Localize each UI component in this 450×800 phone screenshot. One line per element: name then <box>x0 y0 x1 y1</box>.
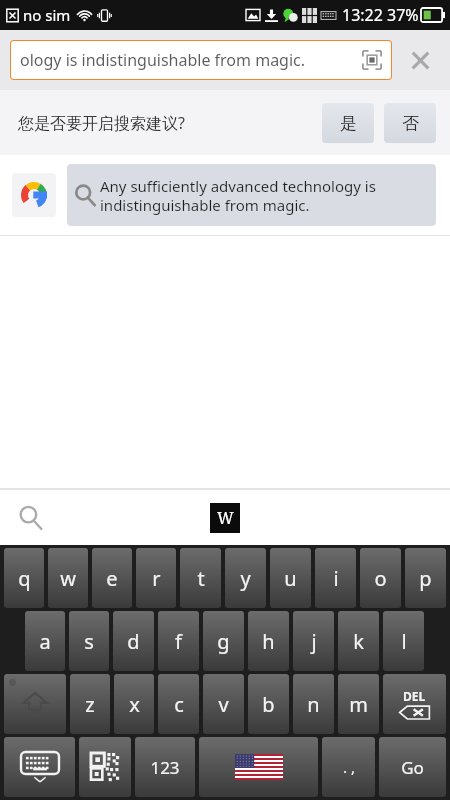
staticText: d <box>127 628 140 655</box>
button[interactable]: Shift <box>4 674 66 734</box>
button[interactable]: l <box>383 611 424 671</box>
staticText: . , <box>343 757 355 777</box>
staticText: o <box>374 565 387 592</box>
staticText: 13:22 <box>342 4 383 26</box>
staticText: h <box>262 628 275 655</box>
staticText: 123 <box>150 756 180 779</box>
button[interactable]: b <box>248 674 289 734</box>
button[interactable]: Scan QR code <box>79 737 131 797</box>
button[interactable]: d <box>113 611 154 671</box>
button[interactable]: g <box>203 611 244 671</box>
staticText: i <box>333 565 339 592</box>
button[interactable]: ology is indistinguishable from magic. <box>10 40 392 80</box>
button[interactable]: v <box>203 674 244 734</box>
staticText: 37% <box>387 4 419 26</box>
staticText: p <box>419 565 432 592</box>
staticText: n <box>307 691 320 718</box>
staticText: 否 <box>402 113 419 134</box>
staticText: ology is indistinguishable from magic. <box>20 49 360 71</box>
staticText: l <box>401 628 407 655</box>
button[interactable]: Wikipedia <box>210 503 240 533</box>
staticText: s <box>84 628 94 655</box>
button[interactable]: n <box>293 674 334 734</box>
button[interactable]: Hide keyboard <box>4 737 75 797</box>
staticText: e <box>106 565 118 592</box>
staticText: v <box>218 691 229 718</box>
button[interactable]: Delete <box>383 674 446 734</box>
staticText: f <box>175 628 182 655</box>
button[interactable]: p <box>405 548 446 608</box>
button[interactable]: e <box>92 548 132 608</box>
button[interactable]: 123 <box>135 737 195 797</box>
button[interactable]: r <box>136 548 176 608</box>
button[interactable]: o <box>360 548 401 608</box>
staticText: Go <box>401 756 424 779</box>
button[interactable]: x <box>114 674 154 734</box>
button[interactable]: y <box>225 548 266 608</box>
button[interactable]: z <box>70 674 110 734</box>
staticText: z <box>85 691 95 718</box>
button[interactable]: q <box>4 548 44 608</box>
staticText: g <box>217 628 230 655</box>
button[interactable]: 是 <box>322 103 374 143</box>
button[interactable]: s <box>69 611 109 671</box>
staticText: j <box>311 628 317 655</box>
staticText: q <box>18 565 31 592</box>
staticText: u <box>284 565 297 592</box>
staticText: W <box>217 507 234 529</box>
button[interactable]: a <box>25 611 65 671</box>
button[interactable]: Search <box>13 500 49 536</box>
button[interactable]: 否 <box>384 103 436 143</box>
staticText: 您是否要开启搜索建议? <box>18 112 322 134</box>
staticText: m <box>349 691 368 718</box>
button[interactable]: Space <box>199 737 318 797</box>
staticText: r <box>152 565 161 592</box>
staticText: k <box>353 628 364 655</box>
staticText: b <box>262 691 275 718</box>
button[interactable]: u <box>270 548 311 608</box>
button[interactable]: Clear search <box>398 38 442 82</box>
staticText: a <box>39 628 51 655</box>
button[interactable]: Any sufficiently advanced technology is … <box>0 155 450 235</box>
button[interactable]: m <box>338 674 379 734</box>
staticText: no sim <box>23 5 71 25</box>
staticText: DEL <box>403 688 426 704</box>
button[interactable]: h <box>248 611 289 671</box>
staticText: 是 <box>340 113 357 134</box>
staticText: w <box>60 565 76 592</box>
button[interactable]: Go <box>379 737 446 797</box>
button[interactable]: . , <box>322 737 375 797</box>
staticText: Any sufficiently advanced technology is … <box>100 176 426 215</box>
button[interactable]: w <box>48 548 88 608</box>
staticText: c <box>174 691 184 718</box>
staticText: x <box>129 691 140 718</box>
button[interactable]: j <box>293 611 334 671</box>
button[interactable]: t <box>180 548 221 608</box>
staticText: t <box>197 565 205 592</box>
staticText: y <box>240 565 251 592</box>
button[interactable]: i <box>315 548 356 608</box>
button[interactable]: f <box>158 611 199 671</box>
button[interactable]: c <box>158 674 199 734</box>
button[interactable]: Scan code <box>360 48 384 72</box>
button[interactable]: k <box>338 611 379 671</box>
